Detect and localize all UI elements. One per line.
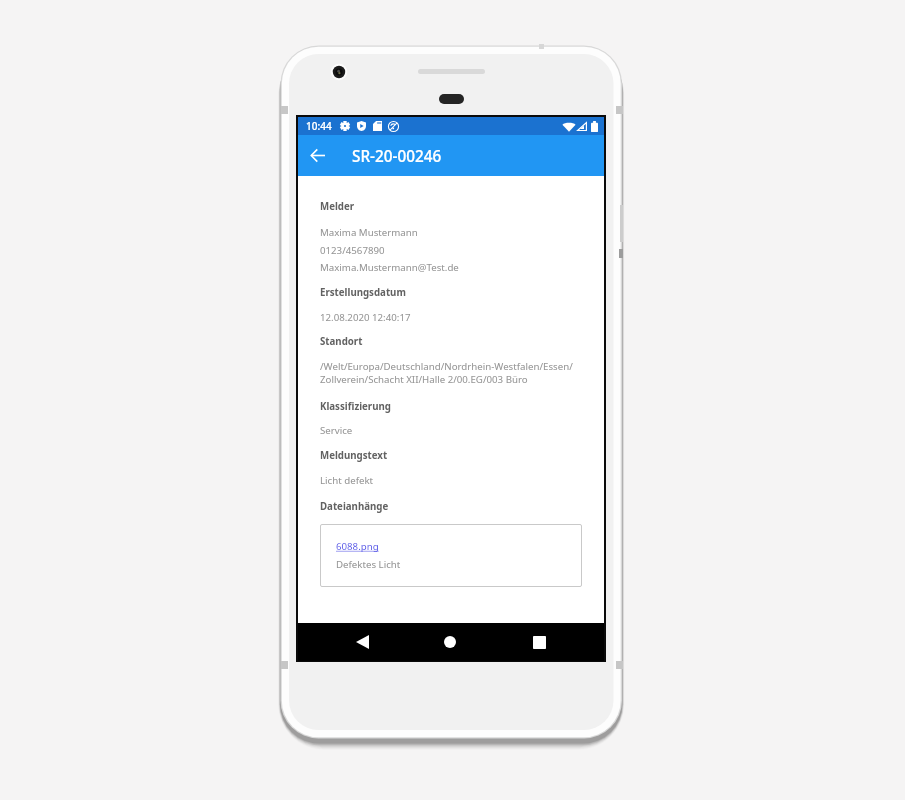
- staticText: Klassifizierung: [320, 400, 391, 413]
- button[interactable]: Recent apps: [521, 623, 557, 661]
- button[interactable]: 6088.png: [320, 524, 582, 587]
- staticText: Maxima.Mustermann@Test.de: [320, 261, 459, 274]
- staticText: Standort: [320, 335, 363, 348]
- staticText: 6088.png: [336, 540, 379, 553]
- staticText: /Welt/Europa/Deutschland/Nordrhein-Westf…: [320, 360, 573, 373]
- staticText: Erstellungsdatum: [320, 286, 406, 299]
- staticText: SR-20-00246: [352, 146, 442, 167]
- staticText: Dateianhänge: [320, 500, 389, 513]
- button[interactable]: Home: [432, 623, 468, 661]
- staticText: Zollverein/Schacht XII/Halle 2/00.EG/003…: [320, 373, 528, 386]
- staticText: Licht defekt: [320, 474, 374, 487]
- staticText: Melder: [320, 200, 355, 213]
- staticText: Defektes Licht: [336, 558, 401, 571]
- staticText: 10:44: [306, 119, 332, 133]
- staticText: 0123/4567890: [320, 244, 385, 257]
- staticText: Service: [320, 424, 353, 437]
- button[interactable]: Back: [344, 623, 380, 661]
- button[interactable]: Back: [300, 135, 336, 176]
- staticText: Maxima Mustermann: [320, 226, 418, 239]
- staticText: 12.08.2020 12:40:17: [320, 311, 411, 324]
- staticText: Meldungstext: [320, 449, 388, 462]
